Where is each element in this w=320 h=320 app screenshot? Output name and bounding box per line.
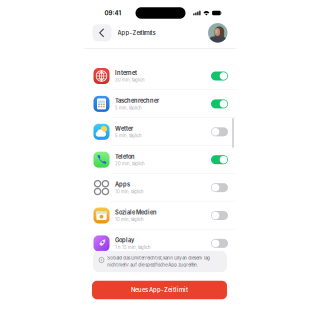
staticText: Goplay (115, 237, 134, 244)
button[interactable]: Apps (84, 174, 236, 201)
button[interactable]: Soziale Medien (84, 201, 236, 229)
button[interactable]: Telefon (84, 146, 236, 174)
staticText: 30 min, täglich (115, 77, 145, 83)
staticText: Apps (115, 181, 130, 188)
button[interactable]: Goplay (84, 229, 236, 257)
staticText: 5 min, täglich (115, 133, 142, 138)
staticText: Telefon (115, 153, 135, 160)
button[interactable]: Back (92, 24, 111, 41)
staticText: Internet (115, 69, 137, 76)
button[interactable]: Neues App-Zeitlimit (92, 281, 227, 299)
staticText: 5 min, täglich (115, 105, 142, 110)
button[interactable]: Taschenrechner (84, 90, 236, 118)
staticText: Soziale Medien (115, 209, 157, 216)
staticText: 20 min, täglich (115, 161, 145, 166)
button[interactable]: Profile (208, 23, 227, 42)
button[interactable]: Wetter (84, 118, 236, 146)
staticText: nicht mehr auf die spezifische App zugre… (107, 262, 198, 268)
staticText: 09:41 (104, 9, 121, 17)
staticText: Sobald das Limit erreicht ist, kann Lill… (107, 255, 210, 261)
staticText: Taschenrechner (115, 97, 159, 104)
staticText: Neues App-Zeitlimit (131, 286, 188, 293)
staticText: Wetter (115, 125, 133, 132)
staticText: 10 min, täglich (115, 217, 144, 222)
staticText: 10 min, täglich (115, 189, 144, 194)
staticText: 1 h 15 min, täglich (115, 245, 151, 250)
staticText: App-Zeitlimits (117, 29, 155, 36)
button[interactable]: Internet (84, 62, 236, 90)
